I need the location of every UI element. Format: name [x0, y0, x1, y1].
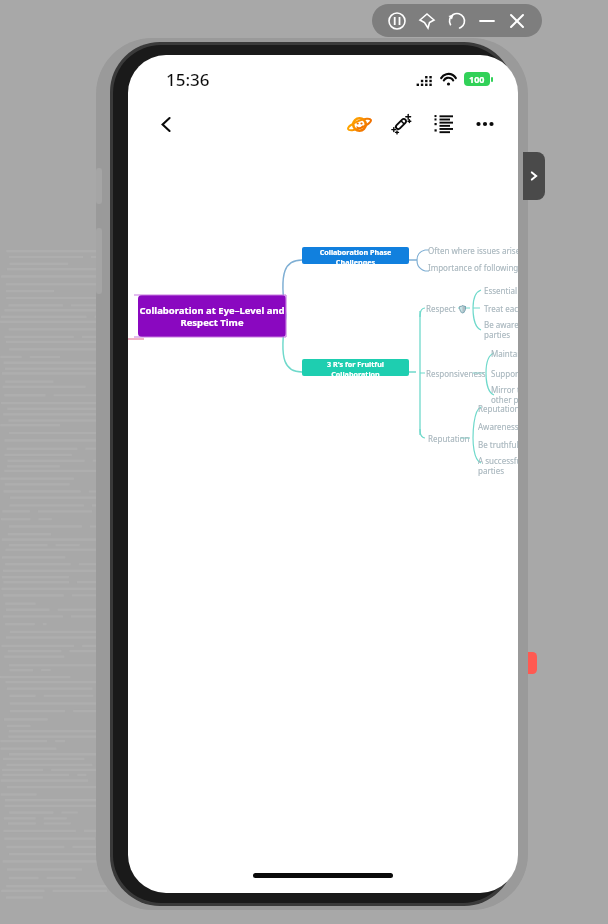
button[interactable]: 3 R's for Fruitful Collaboration	[302, 359, 409, 376]
button[interactable]: Support and u	[491, 368, 518, 379]
staticText: Be aware of the t parties	[484, 319, 518, 340]
button[interactable]: Often where issues arise	[428, 245, 518, 256]
button[interactable]: Awareness of indu	[478, 421, 518, 432]
staticText: Mirror the lev other party	[491, 384, 518, 405]
button[interactable]: Respect 🛡	[426, 303, 468, 314]
button[interactable]: Reputation	[428, 433, 470, 444]
staticText: Collaboration Phase Challenges	[302, 247, 409, 264]
staticText: Reputation	[428, 433, 470, 444]
staticText: Collaboration at Eye–Level and Respect T…	[139, 304, 285, 329]
staticText: 3 R's for Fruitful Collaboration	[302, 359, 409, 376]
button[interactable]: Rewind	[442, 6, 472, 36]
staticText: Support and u	[491, 368, 518, 379]
button[interactable]: More options	[464, 103, 506, 145]
staticText: Maintain resp	[491, 348, 518, 359]
button[interactable]: Treat each other	[484, 303, 518, 314]
staticText: Importance of following "3 R's" for	[428, 262, 518, 273]
button[interactable]: Expand panel	[523, 152, 545, 200]
button[interactable]: Minimize	[472, 6, 502, 36]
staticText: 15:36	[166, 68, 210, 91]
button[interactable]: Be aware of the t parties	[484, 319, 518, 340]
button[interactable]: AI assistant	[338, 103, 380, 145]
button[interactable]: Be truthful and hon	[478, 439, 518, 450]
staticText: 100	[469, 73, 485, 85]
button[interactable]: Pin	[412, 6, 442, 36]
staticText: Essential for first	[484, 285, 518, 296]
button[interactable]: Close	[502, 6, 532, 36]
button[interactable]: Reputation is cruc	[478, 403, 518, 414]
staticText: Responsiveness	[426, 368, 486, 379]
button[interactable]: Essential for first	[484, 285, 518, 296]
staticText: Often where issues arise	[428, 245, 518, 256]
staticText: Treat each other	[484, 303, 518, 314]
button[interactable]: Importance of following "3 R's" for	[428, 262, 518, 273]
button[interactable]: Back	[144, 102, 188, 146]
staticText: Reputation is cruc	[478, 403, 518, 414]
staticText: A successful colla parties	[478, 455, 518, 476]
button[interactable]: Collaboration Phase Challenges	[302, 247, 409, 264]
button[interactable]: Magic wand	[380, 103, 422, 145]
button[interactable]: Pause	[382, 6, 412, 36]
staticText: Respect 🛡	[426, 303, 468, 314]
button[interactable]: Maintain resp	[491, 348, 518, 359]
button[interactable]: Mirror the lev other party	[491, 384, 518, 405]
button[interactable]: Outline list	[422, 103, 464, 145]
button[interactable]: Responsiveness	[426, 368, 486, 379]
staticText: Awareness of indu	[478, 421, 518, 432]
button[interactable]: A successful colla parties	[478, 455, 518, 476]
button[interactable]: Collaboration at Eye–Level and Respect T…	[138, 295, 286, 337]
staticText: Be truthful and hon	[478, 439, 518, 450]
